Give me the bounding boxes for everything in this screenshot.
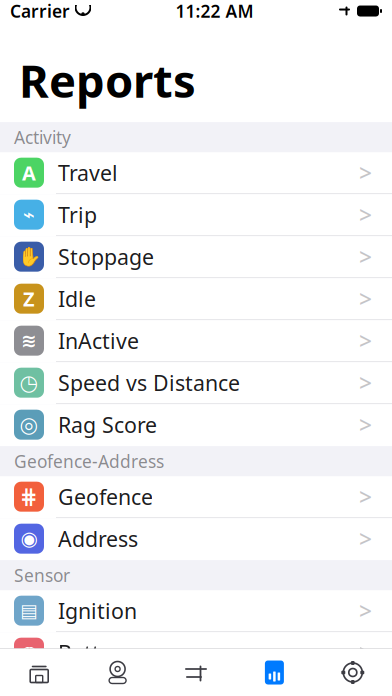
- staticText: ✋: [17, 246, 40, 267]
- button[interactable]: ◍: [0, 632, 392, 674]
- staticText: A: [22, 159, 36, 186]
- staticText: Activity: [14, 126, 71, 149]
- staticText: Stoppage: [58, 242, 154, 271]
- staticText: Geofence-Address: [14, 450, 164, 473]
- staticText: >: [359, 638, 372, 668]
- staticText: Geofence: [58, 482, 153, 511]
- staticText: ◍: [20, 641, 37, 664]
- button[interactable]: ≋: [0, 320, 392, 362]
- staticText: Address: [58, 524, 138, 553]
- staticText: Z: [23, 285, 35, 312]
- button[interactable]: A: [0, 152, 392, 194]
- staticText: Speed vs Distance: [58, 368, 240, 397]
- staticText: Idle: [58, 284, 96, 313]
- staticText: >: [359, 242, 372, 272]
- button[interactable]: ⋕: [0, 476, 392, 518]
- button[interactable]: Reports: [235, 659, 314, 685]
- staticText: >: [359, 284, 372, 314]
- staticText: ◷: [19, 371, 38, 395]
- staticText: ≋: [21, 330, 37, 351]
- staticText: Rag Score: [58, 410, 157, 439]
- button[interactable]: Track: [157, 660, 235, 684]
- staticText: Trip: [58, 200, 97, 229]
- staticText: >: [359, 680, 372, 696]
- staticText: >: [359, 596, 372, 626]
- staticText: ▤: [20, 600, 38, 621]
- staticText: InActive: [58, 326, 139, 355]
- staticText: >: [359, 482, 372, 512]
- button[interactable]: ◉: [0, 518, 392, 560]
- button[interactable]: ✋: [0, 236, 392, 278]
- staticText: Ignition: [58, 596, 137, 625]
- button[interactable]: ◷: [0, 362, 392, 404]
- staticText: Battery: [58, 638, 132, 667]
- staticText: Reports: [19, 50, 196, 110]
- staticText: >: [359, 410, 372, 440]
- staticText: Temperature: [58, 680, 186, 696]
- staticText: >: [359, 326, 372, 356]
- staticText: Travel: [58, 158, 118, 187]
- button[interactable]: ▤: [0, 590, 392, 632]
- staticText: >: [359, 524, 372, 554]
- staticText: >: [359, 200, 372, 230]
- staticText: ◐: [20, 683, 37, 696]
- staticText: Carrier: [10, 0, 70, 22]
- staticText: >: [359, 368, 372, 398]
- button[interactable]: ⌁: [0, 194, 392, 236]
- button[interactable]: Home: [0, 660, 78, 684]
- button[interactable]: Z: [0, 278, 392, 320]
- staticText: Sensor: [14, 564, 70, 587]
- staticText: ⌁: [23, 203, 35, 226]
- staticText: ◉: [20, 527, 37, 550]
- button[interactable]: Places: [78, 659, 157, 685]
- button[interactable]: Settings: [314, 659, 392, 685]
- button[interactable]: ◎: [0, 404, 392, 446]
- staticText: 11:22 AM: [175, 0, 253, 22]
- button[interactable]: ◐: [0, 674, 392, 696]
- staticText: >: [359, 158, 372, 188]
- staticText: ◎: [19, 413, 38, 437]
- staticText: ⋕: [20, 485, 38, 509]
